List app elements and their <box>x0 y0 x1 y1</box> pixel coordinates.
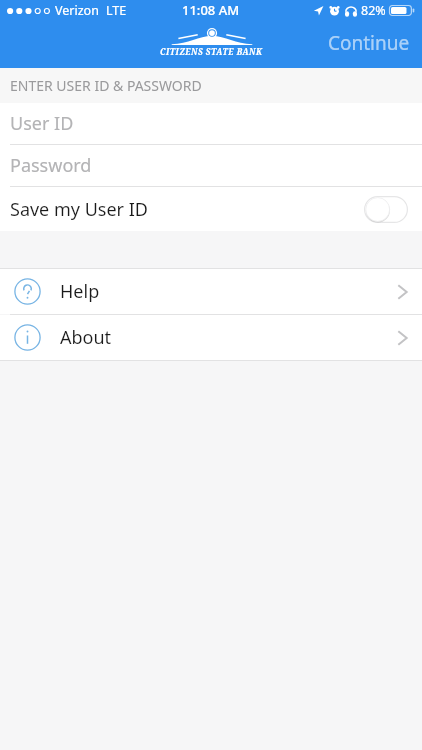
button[interactable]: Help <box>0 269 422 314</box>
staticText: Continue <box>328 30 410 56</box>
staticText: 11:08 AM <box>182 1 240 19</box>
button[interactable]: About <box>0 315 422 360</box>
staticText: Save my User ID <box>10 197 148 222</box>
staticText: 82% <box>361 2 386 19</box>
staticText: Help <box>60 279 100 304</box>
staticText: Verizon <box>55 2 99 19</box>
button[interactable]: User ID <box>0 103 422 144</box>
button[interactable]: Save my User ID <box>0 187 422 231</box>
staticText: Password <box>10 153 92 178</box>
staticText: About <box>60 325 112 350</box>
button[interactable]: Save my User ID toggle <box>364 196 408 223</box>
staticText: LTE <box>106 2 127 19</box>
button[interactable]: Password <box>0 145 422 186</box>
staticText: User ID <box>10 111 74 136</box>
staticText: CITIZENS STATE BANK <box>160 46 263 57</box>
staticText: ENTER USER ID & PASSWORD <box>10 76 202 95</box>
button[interactable]: Continue <box>328 30 410 56</box>
